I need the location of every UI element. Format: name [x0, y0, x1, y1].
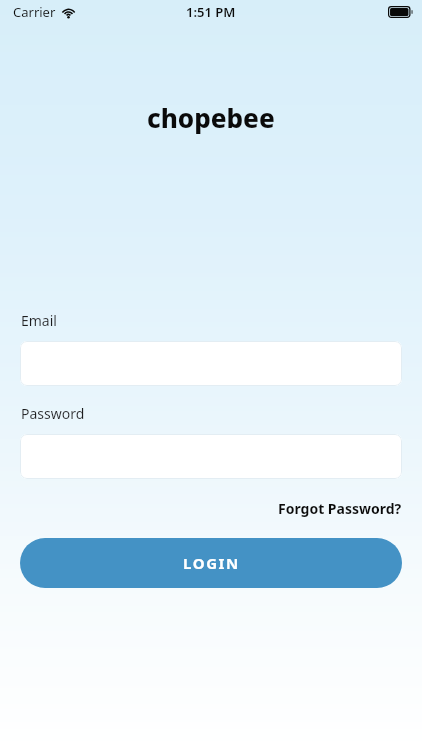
staticText: LOGIN: [183, 553, 240, 573]
staticText: Password: [21, 404, 85, 423]
staticText: 1:51 PM: [186, 3, 236, 21]
staticText: chopebee: [147, 100, 275, 135]
other: Battery: [388, 6, 413, 18]
button[interactable]: Forgot Password?: [278, 497, 422, 520]
other: Wi-Fi: [61, 7, 76, 18]
staticText: Carrier: [13, 3, 56, 21]
button[interactable]: LOGIN: [20, 538, 402, 588]
staticText: Forgot Password?: [278, 499, 402, 518]
button[interactable]: [20, 341, 402, 386]
button[interactable]: [20, 434, 402, 479]
staticText: Email: [21, 311, 57, 330]
